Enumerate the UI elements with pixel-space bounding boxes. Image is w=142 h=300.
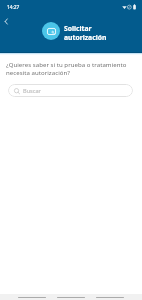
button[interactable]: Back xyxy=(0,15,13,28)
button[interactable]: Solicitar autorización xyxy=(42,22,107,42)
staticText: ¿Quieres saber si tu prueba o tratamient… xyxy=(6,61,139,77)
staticText: 14:27 xyxy=(7,4,20,11)
button[interactable]: Home xyxy=(57,294,85,300)
button[interactable]: Recents xyxy=(96,294,124,300)
button[interactable]: Buscar xyxy=(8,84,133,97)
staticText: Solicitar autorización xyxy=(64,24,107,42)
button[interactable]: Back xyxy=(18,294,46,300)
staticText: Buscar xyxy=(23,87,41,95)
